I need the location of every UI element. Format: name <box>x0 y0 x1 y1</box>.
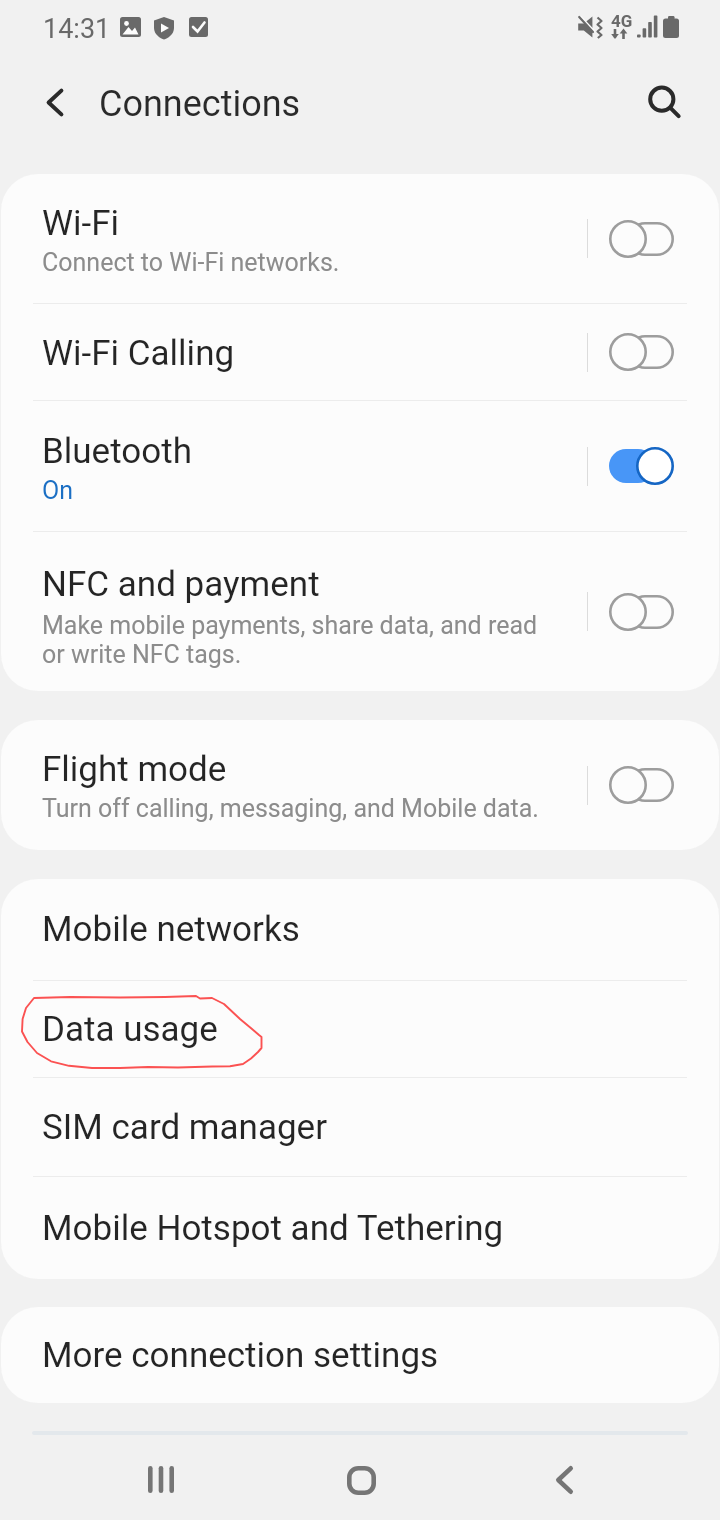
staticText: Mobile Hotspot and Tethering <box>42 1208 504 1249</box>
button[interactable]: Recent apps <box>100 1435 220 1520</box>
staticText: Connect to Wi-Fi networks. <box>42 248 340 277</box>
staticText: SIM card manager <box>42 1107 328 1148</box>
button[interactable]: Mobile Hotspot and Tethering <box>1 1177 719 1279</box>
staticText: On <box>42 476 74 505</box>
staticText: Turn off calling, messaging, and Mobile … <box>42 794 539 823</box>
button[interactable]: Wi-Fi switch <box>588 174 719 303</box>
staticText: 4G <box>611 11 633 31</box>
staticText: Wi-Fi Calling <box>42 333 235 374</box>
button[interactable]: Wi-Fi <box>1 174 719 303</box>
staticText: 14:31 <box>43 13 111 45</box>
button[interactable]: Back <box>10 65 100 143</box>
button[interactable]: Back <box>505 1435 625 1520</box>
button[interactable]: SIM card manager <box>1 1078 719 1176</box>
staticText: Make mobile payments, share data, and re… <box>42 611 561 669</box>
button[interactable]: Bluetooth <box>1 401 719 531</box>
button[interactable]: NFC and payment <box>1 532 719 691</box>
button[interactable]: More connection settings <box>1 1307 719 1403</box>
button[interactable]: Wi-Fi Calling switch <box>588 304 719 400</box>
staticText: Connections <box>99 83 301 125</box>
button[interactable]: Search <box>630 65 720 143</box>
button[interactable]: Bluetooth switch <box>588 401 719 531</box>
staticText: NFC and payment <box>42 564 320 605</box>
staticText: Data usage <box>42 1009 218 1050</box>
button[interactable]: Mobile networks <box>1 879 719 980</box>
staticText: Mobile networks <box>42 909 300 950</box>
button[interactable]: Data usage <box>1 981 719 1077</box>
button[interactable]: Home <box>300 1435 420 1520</box>
staticText: Flight mode <box>42 749 227 790</box>
staticText: Wi-Fi <box>42 203 120 244</box>
button[interactable]: NFC and payment switch <box>588 532 719 691</box>
button[interactable]: Flight mode <box>1 720 719 850</box>
staticText: More connection settings <box>42 1335 439 1376</box>
button[interactable]: Flight mode switch <box>588 720 719 850</box>
staticText: Bluetooth <box>42 431 192 472</box>
button[interactable]: Wi-Fi Calling <box>1 304 719 400</box>
